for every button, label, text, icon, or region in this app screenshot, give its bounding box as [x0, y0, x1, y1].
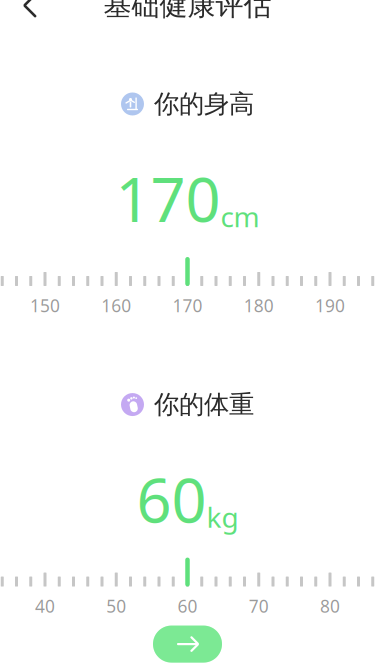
staticText: 你的体重	[154, 389, 254, 420]
staticText: 你的身高	[154, 88, 254, 119]
button[interactable]: 下一步	[153, 626, 222, 663]
staticText: kg	[206, 498, 238, 536]
staticText: 40	[35, 595, 55, 618]
staticText: 180	[244, 294, 274, 317]
staticText: 60	[177, 595, 197, 618]
staticText: 170	[115, 157, 220, 239]
staticText: 基础健康评估	[103, 0, 271, 23]
staticText: 170	[172, 294, 202, 317]
staticText: cm	[220, 198, 259, 235]
staticText: 190	[315, 294, 345, 317]
button[interactable]: 返回	[8, 0, 52, 27]
staticText: 50	[106, 595, 126, 618]
staticText: 150	[30, 294, 60, 317]
staticText: 60	[136, 458, 206, 539]
staticText: 70	[249, 595, 269, 618]
staticText: 160	[101, 294, 131, 317]
staticText: 80	[320, 595, 340, 618]
